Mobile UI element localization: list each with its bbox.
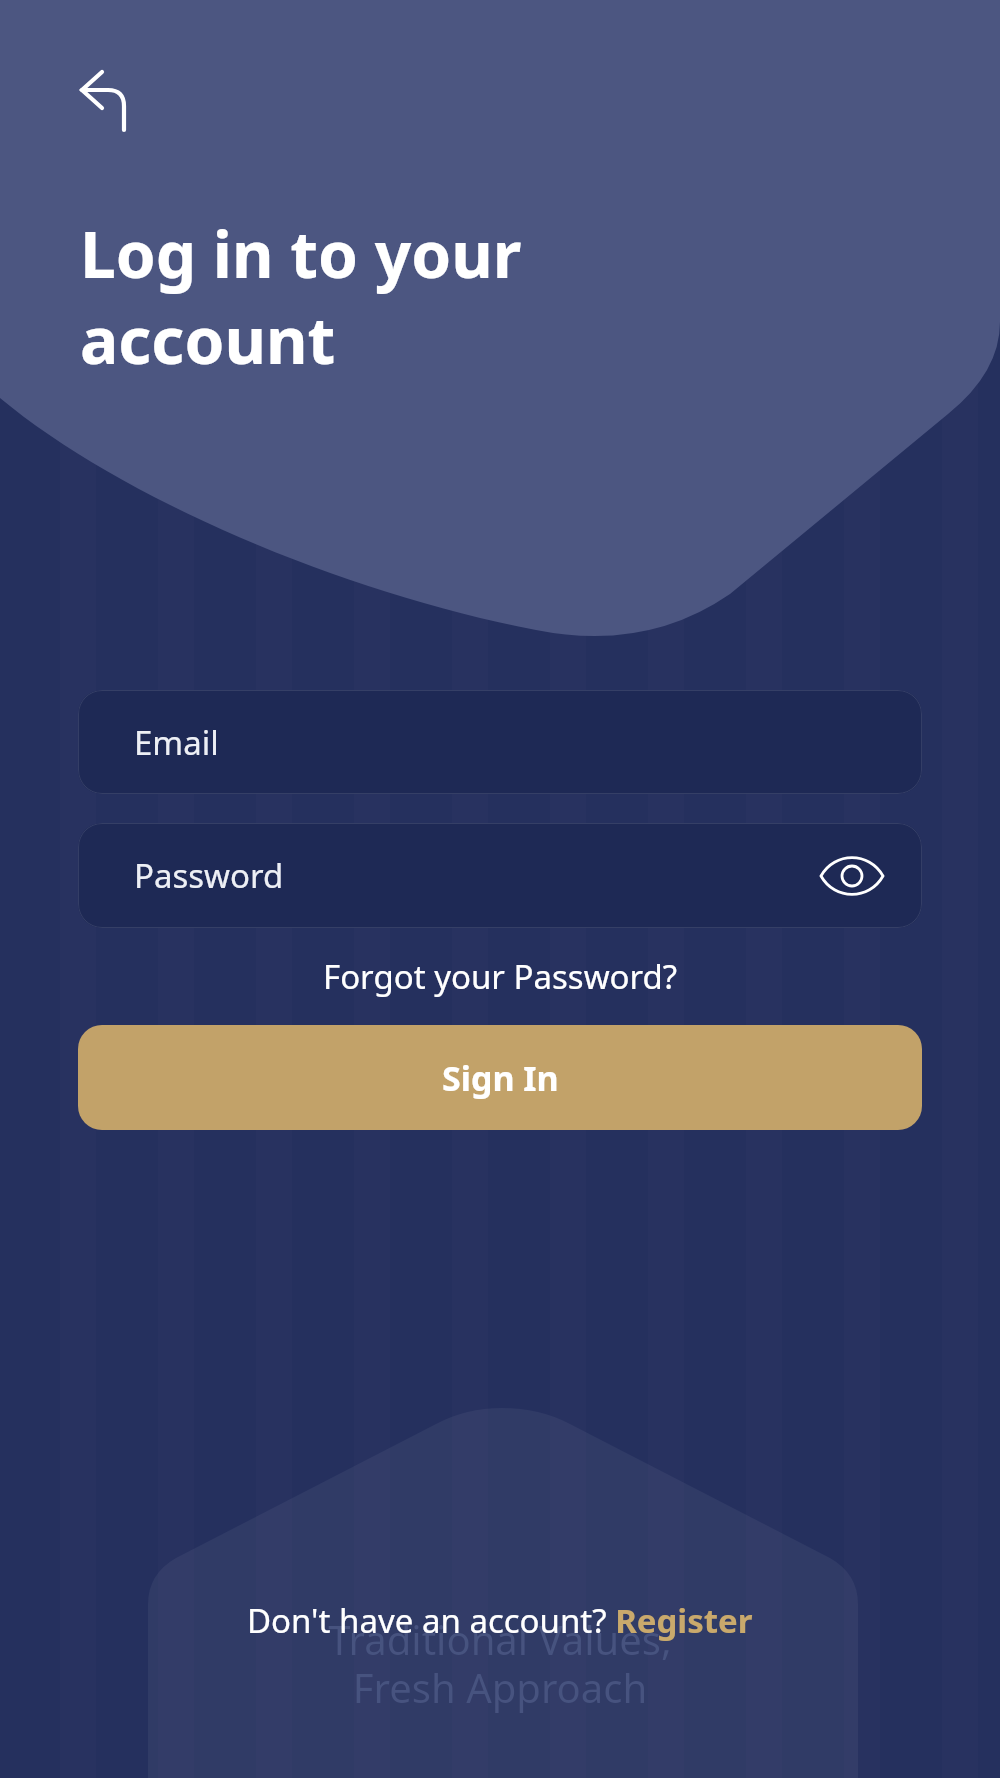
staticText: Fresh Approach: [0, 1660, 1000, 1714]
button[interactable]: Sign In: [78, 1025, 922, 1130]
button[interactable]: Email: [78, 690, 922, 794]
staticText: Email: [134, 720, 219, 765]
button[interactable]: Forgot your Password?: [78, 928, 922, 1025]
staticText: Log in to your account: [80, 210, 522, 383]
button[interactable]: Don't have an account? Register: [0, 1598, 1000, 1643]
staticText: Password: [134, 853, 284, 898]
button[interactable]: [820, 844, 884, 908]
staticText: Don't have an account? Register: [247, 1598, 753, 1643]
staticText: Forgot your Password?: [323, 954, 678, 999]
staticText: Sign In: [442, 1055, 559, 1101]
button[interactable]: Password: [78, 823, 922, 928]
button[interactable]: [66, 56, 150, 140]
staticText: Traditional Values,: [0, 1612, 1000, 1666]
